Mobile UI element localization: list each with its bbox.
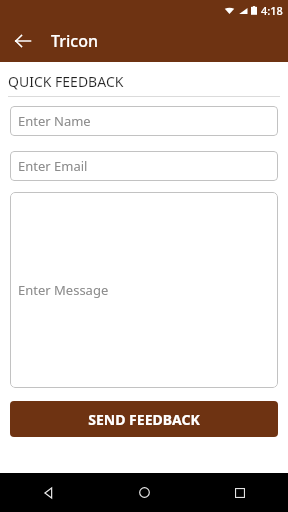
button[interactable]: SEND FEEDBACK: [10, 401, 278, 437]
button[interactable]: Enter Name: [10, 106, 278, 136]
button[interactable]: Home: [96, 473, 192, 512]
button[interactable]: Enter Email: [10, 151, 278, 181]
staticText: Tricon: [51, 30, 98, 52]
button[interactable]: Enter Message: [10, 192, 278, 388]
staticText: SEND FEEDBACK: [88, 410, 200, 429]
staticText: QUICK FEEDBACK: [8, 72, 124, 91]
button[interactable]: Back: [6, 24, 40, 58]
staticText: 4:18: [261, 3, 283, 18]
button[interactable]: Recent apps: [192, 473, 288, 512]
staticText: Enter Name: [18, 112, 91, 130]
staticText: Enter Message: [18, 281, 109, 299]
button[interactable]: Back: [0, 473, 96, 512]
staticText: Enter Email: [18, 157, 88, 175]
